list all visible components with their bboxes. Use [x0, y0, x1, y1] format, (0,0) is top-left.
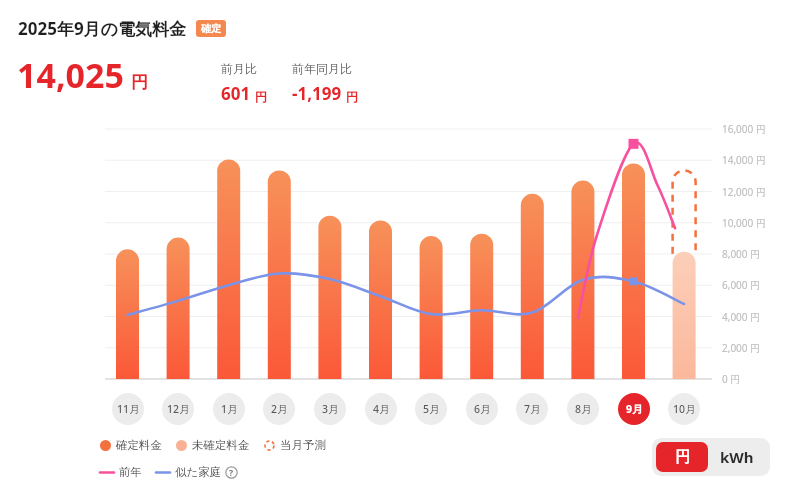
staticText: ? — [229, 467, 234, 479]
staticText: 円 — [675, 448, 690, 467]
staticText: kWh — [720, 447, 754, 467]
button[interactable]: 似た家庭 — [156, 465, 222, 479]
staticText: 円 — [346, 89, 358, 104]
staticText: 5月 — [423, 402, 440, 416]
staticText: 6,000 円 — [722, 278, 761, 292]
staticText: 1月 — [221, 402, 238, 416]
staticText: 11月 — [117, 402, 140, 416]
staticText: 確定料金 — [116, 438, 162, 452]
staticText: 4,000 円 — [722, 310, 761, 324]
staticText: 10,000 円 — [722, 216, 766, 230]
staticText: 前年同月比 — [292, 61, 352, 76]
staticText: 16,000 円 — [722, 122, 766, 136]
staticText: 12月 — [167, 402, 190, 416]
button[interactable]: 10月 — [668, 393, 700, 425]
staticText: 14,000 円 — [722, 153, 766, 167]
button[interactable]: kWh — [708, 442, 766, 472]
button[interactable]: 未確定料金 — [176, 438, 250, 452]
staticText: 円 — [131, 72, 148, 93]
button[interactable]: 円 — [656, 442, 708, 472]
button[interactable]: 2月 — [263, 393, 295, 425]
staticText: 前月比 — [221, 61, 257, 76]
staticText: 未確定料金 — [192, 438, 250, 452]
button[interactable]: 1月 — [213, 393, 245, 425]
staticText: 10月 — [673, 402, 696, 416]
staticText: 2月 — [271, 402, 288, 416]
staticText: 6月 — [474, 402, 491, 416]
button[interactable]: 当月予測 — [264, 438, 326, 452]
button[interactable]: 6月 — [466, 393, 498, 425]
button[interactable]: 7月 — [516, 393, 548, 425]
staticText: 確定 — [201, 22, 221, 35]
staticText: 2025年9月の電気料金 — [18, 17, 187, 40]
staticText: 当月予測 — [280, 438, 326, 452]
button[interactable]: 似た家庭についての説明 — [225, 466, 238, 479]
button[interactable]: 11月 — [112, 393, 144, 425]
button[interactable]: 確定料金 — [100, 438, 162, 452]
staticText: 0 円 — [722, 372, 741, 386]
staticText: 円 — [255, 89, 267, 104]
button[interactable]: 12月 — [162, 393, 194, 425]
staticText: 前年 — [119, 465, 142, 479]
staticText: 601 — [221, 82, 251, 105]
staticText: 似た家庭 — [175, 465, 222, 479]
staticText: 7月 — [524, 402, 541, 416]
staticText: 12,000 円 — [722, 185, 766, 199]
staticText: 8月 — [575, 402, 592, 416]
staticText: 2,000 円 — [722, 341, 761, 355]
button[interactable]: 3月 — [314, 393, 346, 425]
button[interactable]: 4月 — [365, 393, 397, 425]
staticText: 14,025 — [17, 52, 124, 98]
staticText: 8,000 円 — [722, 247, 761, 261]
button[interactable]: 9月 — [618, 393, 650, 425]
staticText: 9月 — [626, 402, 643, 416]
staticText: 4月 — [373, 402, 390, 416]
button[interactable]: 5月 — [415, 393, 447, 425]
button[interactable]: 8月 — [567, 393, 599, 425]
staticText: 3月 — [322, 402, 339, 416]
staticText: -1,199 — [292, 82, 342, 105]
button[interactable]: 前年 — [100, 465, 142, 479]
